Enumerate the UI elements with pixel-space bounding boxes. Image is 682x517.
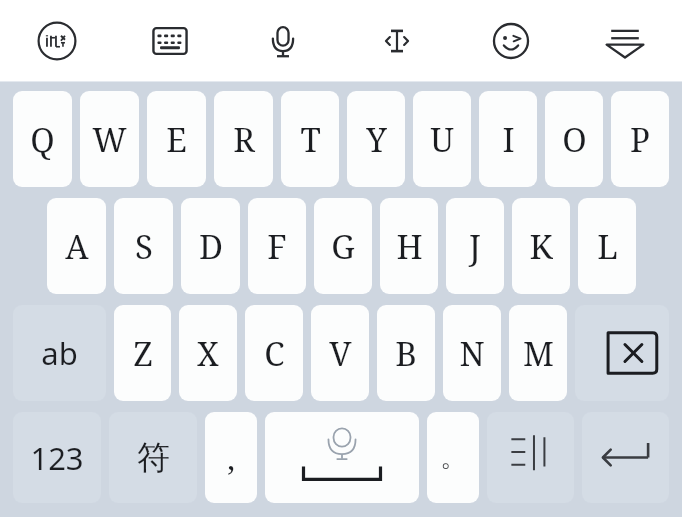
button[interactable]: T xyxy=(281,91,339,187)
staticText: R xyxy=(233,117,255,162)
button[interactable]: Voice input xyxy=(226,0,340,82)
button[interactable]: V xyxy=(311,305,369,401)
button[interactable]: U xyxy=(413,91,471,187)
button[interactable]: L xyxy=(578,198,636,294)
staticText: Y xyxy=(366,117,387,162)
button[interactable]: 123 xyxy=(13,412,101,503)
staticText: O xyxy=(562,117,587,162)
staticText: T xyxy=(300,117,321,162)
staticText: J xyxy=(469,224,481,269)
staticText: K xyxy=(529,224,553,269)
staticText: , xyxy=(227,437,235,479)
staticText: N xyxy=(459,331,485,376)
button[interactable]: 符 xyxy=(109,412,197,503)
staticText: X xyxy=(197,331,219,376)
staticText: ab xyxy=(41,332,78,374)
staticText: 符 xyxy=(137,437,170,479)
staticText: E xyxy=(166,117,187,162)
button[interactable]: O xyxy=(545,91,603,187)
staticText: I xyxy=(502,117,515,162)
button[interactable]: F xyxy=(248,198,306,294)
button[interactable]: ab xyxy=(13,305,106,401)
button[interactable]: I xyxy=(479,91,537,187)
staticText: H xyxy=(396,224,423,269)
button[interactable]: Emoji xyxy=(454,0,568,82)
staticText: Q xyxy=(30,117,55,162)
button[interactable]: X xyxy=(179,305,237,401)
button[interactable]: Space xyxy=(265,412,419,503)
staticText: M xyxy=(523,331,554,376)
button[interactable]: Q xyxy=(13,91,72,187)
button[interactable]: D xyxy=(181,198,240,294)
button[interactable]: S xyxy=(114,198,173,294)
staticText: 123 xyxy=(30,437,84,479)
staticText: F xyxy=(267,224,287,269)
button[interactable]: Backspace xyxy=(575,305,669,401)
staticText: W xyxy=(92,117,127,162)
staticText: D xyxy=(199,224,223,269)
button[interactable]: Z xyxy=(114,305,171,401)
button[interactable]: C xyxy=(245,305,303,401)
button[interactable]: 。 xyxy=(427,412,479,503)
staticText: B xyxy=(395,331,417,376)
button[interactable]: Input method logo xyxy=(0,0,113,82)
staticText: S xyxy=(135,224,153,269)
staticText: 。 xyxy=(440,441,466,474)
button[interactable]: G xyxy=(314,198,372,294)
button[interactable]: Move cursor xyxy=(340,0,454,82)
button[interactable]: A xyxy=(47,198,106,294)
button[interactable]: K xyxy=(512,198,570,294)
staticText: G xyxy=(331,224,355,269)
staticText: P xyxy=(630,117,650,162)
button[interactable]: Hide keyboard xyxy=(568,0,682,82)
button[interactable]: W xyxy=(80,91,139,187)
staticText: L xyxy=(597,224,618,269)
button[interactable]: , xyxy=(205,412,257,503)
button[interactable]: Switch language xyxy=(487,412,574,503)
button[interactable]: E xyxy=(147,91,206,187)
button[interactable]: Keyboard layout xyxy=(113,0,226,82)
button[interactable]: M xyxy=(509,305,567,401)
button[interactable]: Y xyxy=(347,91,405,187)
button[interactable]: R xyxy=(214,91,273,187)
staticText: U xyxy=(430,117,454,162)
staticText: Z xyxy=(133,331,153,376)
button[interactable]: J xyxy=(446,198,504,294)
staticText: V xyxy=(329,331,352,376)
staticText: C xyxy=(264,331,285,376)
staticText: A xyxy=(65,224,89,269)
button[interactable]: Enter xyxy=(582,412,669,503)
button[interactable]: B xyxy=(377,305,435,401)
button[interactable]: N xyxy=(443,305,501,401)
button[interactable]: P xyxy=(611,91,669,187)
button[interactable]: H xyxy=(380,198,438,294)
